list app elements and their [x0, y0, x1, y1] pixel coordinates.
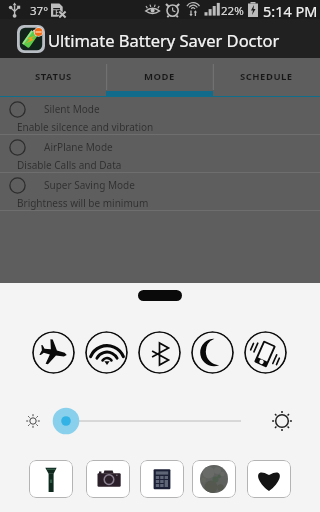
staticText: Enable silcence and vibration — [17, 120, 154, 134]
staticText: Silent Mode — [44, 102, 100, 116]
button[interactable]: AirPlane Mode — [0, 135, 320, 173]
staticText: Disable Calls and Data — [17, 158, 122, 172]
staticText: Super Saving Mode — [44, 178, 135, 192]
button[interactable]: Do not disturb — [191, 331, 234, 374]
staticText: STATUS — [35, 70, 72, 83]
button[interactable]: SCHEDULE — [213, 58, 320, 96]
button[interactable]: Browser — [192, 460, 236, 498]
button[interactable]: Calculator — [140, 460, 184, 498]
staticText: Brightness will be minimum — [17, 196, 149, 210]
button[interactable]: Camera — [86, 460, 130, 498]
button[interactable]: Airplane mode — [32, 331, 75, 374]
staticText: SCHEDULE — [240, 70, 293, 83]
button[interactable]: Vibrate — [244, 331, 287, 374]
staticText: AirPlane Mode — [44, 140, 113, 154]
staticText: MODE — [144, 70, 175, 83]
button[interactable]: Favorites — [247, 460, 291, 498]
button[interactable]: Bluetooth — [138, 331, 181, 374]
button[interactable]: Wi-Fi — [85, 331, 128, 374]
button[interactable]: Super Saving Mode — [0, 173, 320, 211]
staticText: 22% — [221, 3, 244, 19]
button[interactable]: STATUS — [0, 58, 106, 96]
button[interactable]: Silent Mode — [0, 97, 320, 135]
button[interactable]: MODE — [106, 58, 213, 96]
staticText: Ultimate Battery Saver Doctor — [48, 29, 280, 51]
staticText: 37° — [30, 3, 49, 19]
button[interactable]: Flashlight — [29, 460, 73, 498]
staticText: 5:14 PM — [263, 1, 318, 20]
